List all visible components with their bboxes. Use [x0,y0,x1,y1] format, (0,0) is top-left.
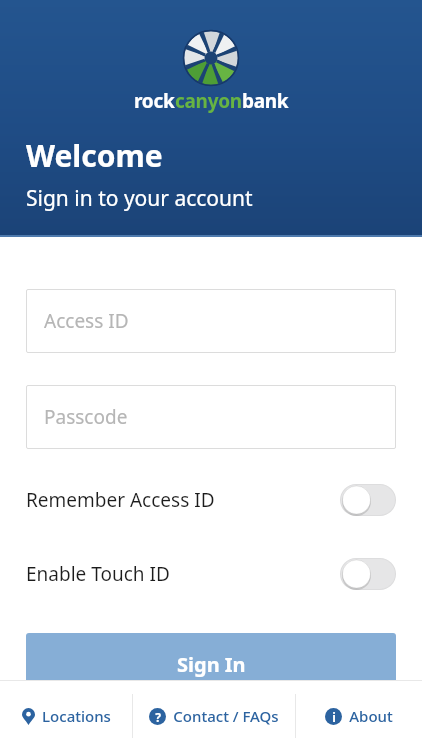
staticText: Enable Touch ID [26,561,340,587]
button[interactable]: Access ID [26,289,396,353]
staticText: About [349,706,393,726]
button[interactable]: Remember Access ID [0,476,422,524]
staticText: Remember Access ID [26,487,340,513]
button[interactable]: Locations [0,681,132,750]
staticText: Passcode [44,404,128,430]
staticText: Locations [42,706,111,726]
button[interactable]: Toggle [340,484,396,516]
staticText: Sign in to your account [26,184,253,213]
staticText: Access ID [44,308,129,334]
button[interactable]: Passcode [26,385,396,449]
staticText: Contact / FAQs [173,706,279,726]
button[interactable]: i [296,681,422,750]
button[interactable]: Sign In [26,633,396,695]
staticText: Welcome [26,135,163,176]
staticText: bank [242,88,289,114]
staticText: canyon [175,88,242,114]
button[interactable]: Toggle [340,558,396,590]
staticText: rock [134,88,175,114]
button[interactable]: Enable Touch ID [0,550,422,598]
staticText: Sign In [177,651,246,678]
button[interactable]: ? [133,681,295,750]
staticText: i [332,709,336,725]
staticText: ? [155,709,161,725]
